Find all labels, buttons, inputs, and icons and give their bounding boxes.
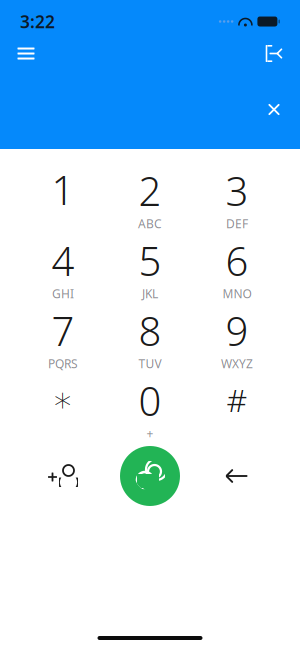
staticText: 7 (51, 304, 74, 357)
staticText: TUV (138, 356, 161, 371)
button[interactable]: 4 (19, 231, 106, 301)
button[interactable]: Clear (256, 91, 292, 127)
button[interactable]: ∗ (19, 371, 106, 441)
staticText: 2 (138, 164, 161, 217)
button[interactable]: 2 (106, 161, 193, 231)
staticText: # (226, 378, 247, 421)
button[interactable]: Call (106, 441, 193, 511)
staticText: MNO (222, 286, 251, 301)
staticText: 9 (225, 304, 248, 357)
button[interactable]: 1 (19, 161, 106, 231)
staticText: 3:22 (20, 10, 55, 33)
button[interactable]: 3 (193, 161, 280, 231)
staticText: ∗ (52, 380, 74, 419)
staticText: GHI (52, 286, 74, 301)
button[interactable]: 9 (193, 301, 280, 371)
button[interactable]: 6 (193, 231, 280, 301)
staticText: 5 (138, 234, 161, 287)
staticText: WXYZ (221, 356, 253, 371)
staticText: 0 (138, 374, 161, 427)
button[interactable]: 0 (106, 371, 193, 441)
button[interactable]: Log out (254, 36, 294, 70)
button[interactable]: 8 (106, 301, 193, 371)
staticText: 3 (225, 164, 248, 217)
staticText: PQRS (48, 356, 78, 371)
staticText: + (146, 426, 153, 441)
staticText: 1 (51, 163, 74, 216)
button[interactable]: 5 (106, 231, 193, 301)
button[interactable]: # (193, 371, 280, 441)
button[interactable]: Menu (6, 36, 46, 70)
staticText: DEF (226, 216, 248, 231)
staticText: JKL (142, 286, 158, 301)
staticText: 4 (51, 234, 74, 287)
staticText: ABC (138, 216, 162, 231)
button[interactable]: Delete (193, 441, 280, 511)
button[interactable]: 7 (19, 301, 106, 371)
staticText: 6 (225, 234, 248, 287)
button[interactable]: Add contact (19, 441, 106, 511)
staticText: 8 (138, 304, 161, 357)
